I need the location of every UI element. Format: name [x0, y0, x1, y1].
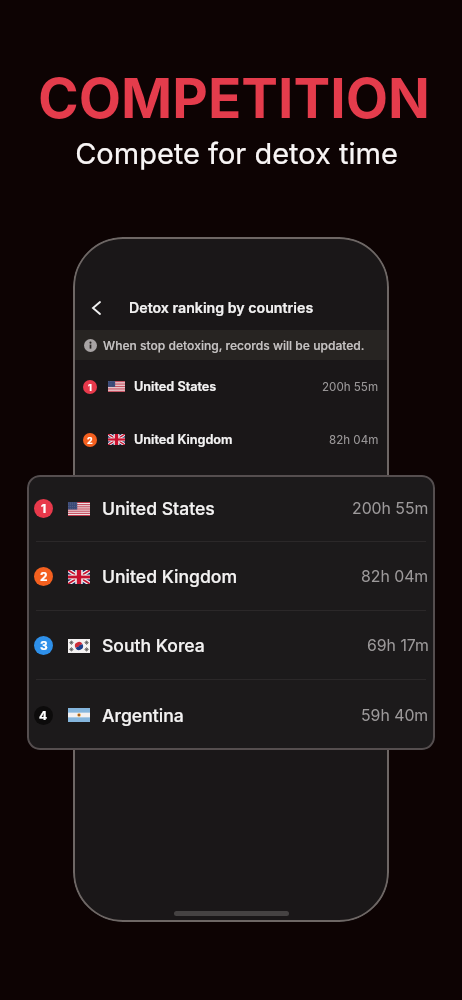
staticText: COMPETITION — [38, 65, 430, 132]
staticText: United States — [102, 498, 215, 519]
staticText: 82h 04m — [329, 433, 379, 447]
staticText: 59h 40m — [361, 706, 429, 725]
button[interactable]: 3 — [73, 466, 389, 519]
staticText: When stop detoxing, records will be upda… — [103, 338, 365, 353]
staticText: Compete for detox time — [75, 136, 398, 171]
staticText: 200h 55m — [352, 499, 429, 518]
staticText: Argentina — [102, 705, 184, 726]
staticText: South Korea — [102, 635, 205, 656]
staticText: United States — [134, 379, 217, 394]
staticText: Detox ranking by countries — [129, 299, 314, 316]
staticText: United Kingdom — [102, 566, 238, 587]
staticText: 2 — [87, 435, 93, 446]
staticText: 4 — [39, 708, 48, 723]
staticText: 82h 04m — [361, 567, 429, 586]
button[interactable]: 2 — [73, 413, 389, 466]
button[interactable]: 3 — [27, 611, 435, 680]
button[interactable]: 2 — [27, 542, 435, 611]
staticText: 200h 55m — [322, 380, 379, 394]
button[interactable]: 1 — [27, 475, 435, 542]
button[interactable]: 4 — [27, 680, 435, 750]
staticText: 3 — [40, 638, 48, 653]
staticText: 2 — [40, 569, 48, 584]
staticText: 1 — [41, 501, 47, 516]
staticText: 69h 17m — [367, 636, 429, 655]
button[interactable]: Back — [78, 290, 114, 326]
staticText: United Kingdom — [134, 432, 233, 447]
staticText: 1 — [88, 382, 92, 393]
button[interactable]: 1 — [73, 360, 389, 413]
